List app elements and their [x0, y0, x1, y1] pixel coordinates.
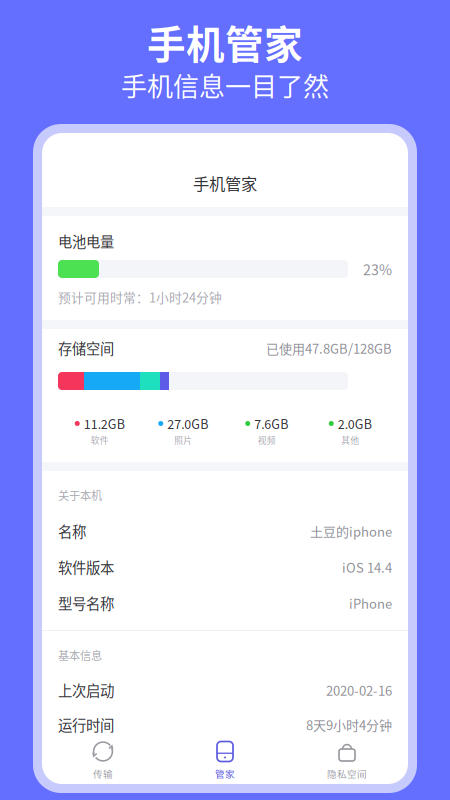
staticText: 软件 [91, 434, 109, 446]
staticText: 预计可用时常：1小时24分钟 [58, 288, 222, 306]
staticText: iPhone [349, 593, 392, 612]
staticText: 名称 [58, 521, 86, 541]
staticText: 上次启动 [58, 680, 114, 700]
button[interactable]: 隐私空间 [286, 741, 408, 784]
staticText: 土豆的iphone [310, 521, 392, 540]
staticText: 其他 [341, 434, 359, 446]
staticText: 关于本机 [58, 487, 102, 503]
staticText: 8天9小时4分钟 [306, 715, 392, 734]
staticText: 手机信息一目了然 [121, 66, 329, 104]
staticText: 2020-02-16 [326, 680, 392, 699]
staticText: iOS 14.4 [342, 557, 392, 576]
staticText: 照片 [174, 434, 192, 446]
staticText: 软件版本 [58, 557, 114, 577]
staticText: 存储空间 [58, 338, 114, 358]
staticText: 型号名称 [58, 593, 114, 613]
staticText: 7.6GB [254, 414, 288, 432]
staticText: 23% [363, 259, 392, 279]
staticText: 隐私空间 [327, 766, 367, 780]
staticText: 视频 [258, 434, 276, 446]
staticText: 手机管家 [147, 14, 303, 70]
staticText: 运行时间 [58, 714, 114, 735]
button[interactable]: 管家 [164, 741, 286, 784]
staticText: 已使用47.8GB/128GB [266, 338, 392, 357]
staticText: 传输 [93, 766, 113, 780]
staticText: 电池电量 [58, 231, 114, 251]
staticText: 2.0GB [338, 414, 372, 432]
staticText: 11.2GB [84, 414, 125, 432]
staticText: 基本信息 [58, 647, 102, 663]
staticText: 手机管家 [193, 171, 257, 195]
staticText: 27.0GB [167, 414, 208, 432]
staticText: 管家 [215, 766, 235, 780]
button[interactable]: 传输 [42, 741, 164, 784]
